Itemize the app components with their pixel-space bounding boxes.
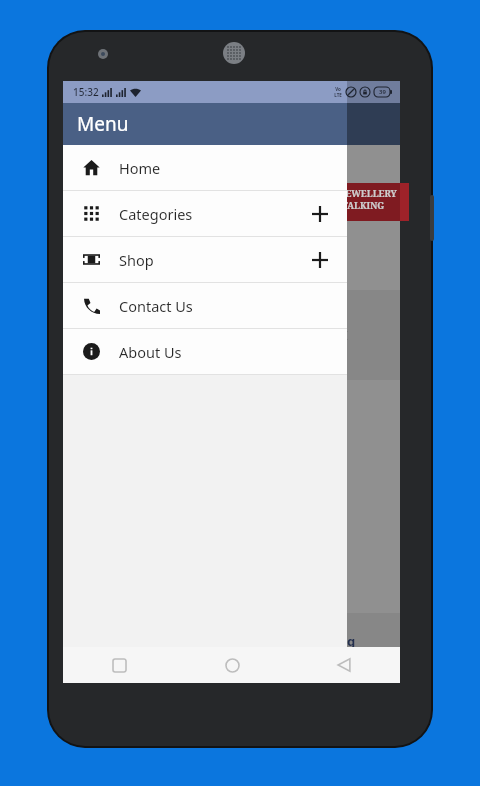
button[interactable]: Categories: [63, 191, 347, 236]
staticText: Home: [119, 158, 161, 178]
button[interactable]: Shop: [63, 237, 347, 282]
staticText: LTE: [334, 92, 342, 98]
staticText: P: [347, 650, 354, 664]
staticText: About Us: [119, 342, 182, 362]
button[interactable]: Recent apps: [101, 647, 137, 683]
button[interactable]: Back: [326, 647, 362, 683]
staticText: Menu: [77, 111, 129, 137]
staticText: Vo: [335, 86, 341, 92]
staticText: TALKING: [342, 199, 385, 211]
button[interactable]: About Us: [63, 329, 347, 374]
button[interactable]: Home: [63, 145, 347, 190]
staticText: 39: [379, 88, 386, 96]
button[interactable]: Home: [214, 647, 250, 683]
staticText: Categories: [119, 204, 193, 224]
staticText: Contact Us: [119, 296, 193, 316]
staticText: Shop: [119, 250, 154, 270]
staticText: 15:32: [73, 85, 99, 99]
button[interactable]: Contact Us: [63, 283, 347, 328]
staticText: JEWELLERY: [342, 187, 397, 199]
staticText: g: [347, 632, 356, 650]
staticText: TI: [335, 326, 348, 344]
